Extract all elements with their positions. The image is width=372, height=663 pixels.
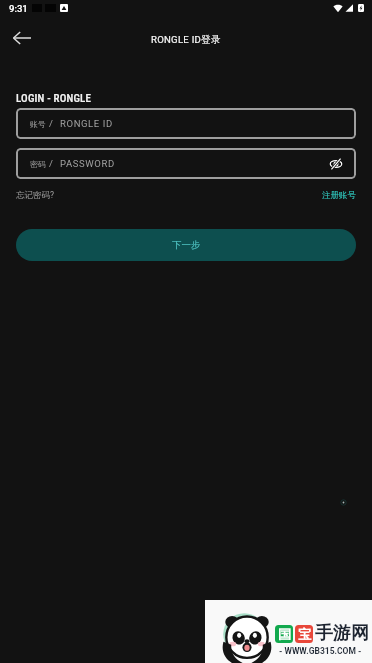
staticText: RONGLE ID [60, 118, 113, 129]
staticText: 国 [278, 626, 291, 642]
button[interactable]: 密码 [16, 148, 356, 179]
staticText: / [46, 118, 60, 129]
button[interactable]: 忘记密码? [16, 190, 55, 201]
staticText: 宝 [298, 626, 311, 642]
staticText: 9:31 [9, 3, 28, 14]
staticText: LOGIN - RONGLE [16, 92, 92, 105]
button[interactable]: Back [6, 22, 38, 54]
staticText: 注册账号 [322, 190, 356, 201]
button[interactable]: 注册账号 [322, 190, 356, 201]
staticText: PASSWORD [60, 158, 115, 169]
staticText: / [46, 158, 60, 169]
staticText: RONGLE ID登录 [151, 34, 221, 46]
staticText: - WWW.GB315.COM - [279, 646, 362, 656]
staticText: 账号 [30, 119, 46, 129]
staticText: 忘记密码? [16, 190, 55, 201]
button[interactable]: Toggle password visibility [327, 155, 345, 173]
staticText: 下一步 [172, 239, 201, 251]
button[interactable]: 账号 [16, 108, 356, 139]
button[interactable]: 下一步 [16, 229, 356, 261]
staticText: 手游网 [315, 622, 369, 645]
staticText: 密码 [30, 159, 46, 169]
